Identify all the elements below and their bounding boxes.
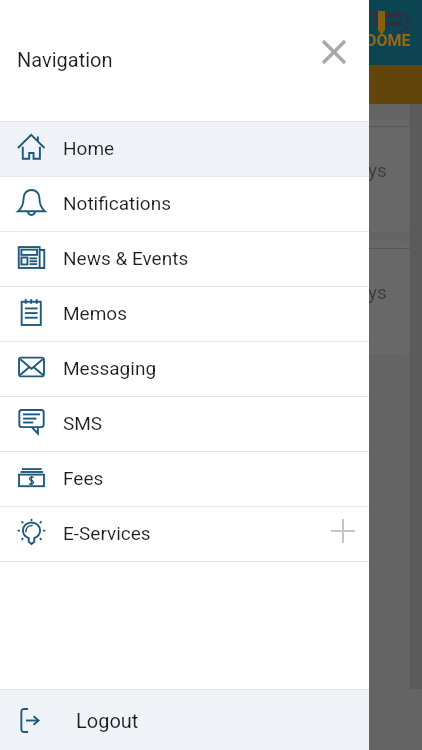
button[interactable]: Fees <box>0 452 369 506</box>
staticText: Notifications <box>63 192 172 214</box>
staticText: days <box>347 159 387 181</box>
button[interactable]: Expand E-Services <box>316 507 369 561</box>
staticText: days <box>347 281 387 303</box>
staticText: Logout <box>76 709 139 732</box>
button[interactable]: Notifications <box>0 177 369 231</box>
staticText: DOME <box>366 31 411 50</box>
staticText: E-Services <box>63 522 151 544</box>
button[interactable]: E-Services <box>0 507 369 561</box>
staticText: Navigation <box>17 48 113 71</box>
button[interactable]: Logout <box>0 690 369 750</box>
staticText: Messaging <box>63 357 157 379</box>
button[interactable]: SMS <box>0 397 369 451</box>
staticText: Memos <box>63 302 127 324</box>
staticText: Home <box>63 137 115 159</box>
staticText: SMS <box>63 412 103 434</box>
staticText: News & Events <box>63 247 189 269</box>
button[interactable]: Messaging <box>0 342 369 396</box>
button[interactable]: Memos <box>0 287 369 341</box>
button[interactable]: News & Events <box>0 232 369 286</box>
staticText: Fees <box>63 467 104 489</box>
button[interactable]: Home <box>0 122 369 176</box>
button[interactable]: Close navigation <box>311 29 357 75</box>
